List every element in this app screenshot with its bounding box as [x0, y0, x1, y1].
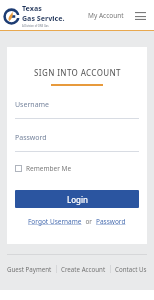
staticText: Password — [96, 217, 126, 226]
button[interactable]: Password — [15, 133, 139, 152]
staticText: My Account — [88, 11, 124, 20]
button[interactable]: Open navigation menu — [132, 8, 148, 24]
staticText: Password — [15, 133, 47, 143]
staticText: Create Account — [61, 265, 106, 273]
button[interactable]: Password — [96, 217, 126, 226]
button[interactable]: Login — [15, 190, 139, 208]
button[interactable]: Username — [15, 100, 139, 119]
button[interactable]: Forgot Username — [28, 217, 82, 226]
staticText: SIGN INTO ACCOUNT — [34, 67, 121, 78]
staticText: Forgot Username — [28, 217, 82, 226]
staticText: Username — [15, 100, 50, 110]
staticText: Texas — [22, 4, 42, 14]
staticText: Login — [67, 194, 88, 205]
button[interactable]: Guest Payment — [6, 263, 53, 275]
button[interactable]: Contact Us — [114, 263, 148, 275]
button[interactable]: Remember Me — [15, 163, 72, 174]
staticText: Gas Service. — [22, 14, 65, 24]
staticText: Remember Me — [26, 164, 72, 173]
staticText: A Division of ONE Gas — [22, 24, 49, 28]
button[interactable]: Create Account — [60, 263, 107, 275]
staticText: or — [82, 217, 96, 226]
button[interactable]: Texas — [4, 4, 65, 28]
staticText: Guest Payment — [7, 265, 52, 273]
staticText: Contact Us — [115, 265, 147, 273]
button[interactable]: My Account — [86, 7, 126, 24]
